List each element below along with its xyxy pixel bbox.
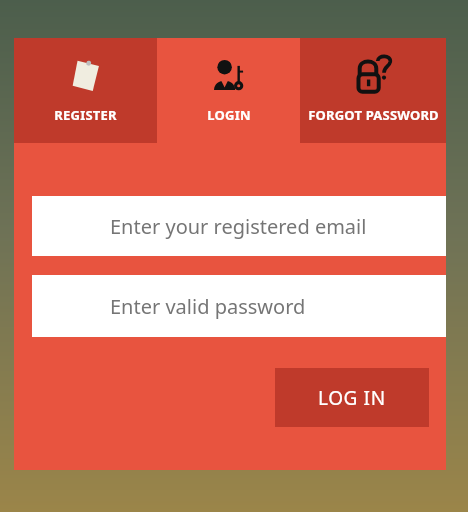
button[interactable]: Forgot password <box>300 38 446 143</box>
button[interactable]: Login <box>157 38 300 143</box>
staticText: Enter your registered email <box>110 213 367 240</box>
button[interactable]: LOG IN <box>275 368 429 427</box>
staticText: LOGIN <box>207 106 251 124</box>
staticText: FORGOT PASSWORD <box>308 106 439 124</box>
button[interactable]: Register <box>14 38 157 143</box>
other: Register <box>64 54 108 98</box>
staticText: Enter valid password <box>110 293 306 320</box>
staticText: LOG IN <box>318 385 386 411</box>
staticText: REGISTER <box>54 106 117 124</box>
button[interactable]: Enter valid password <box>32 275 446 337</box>
other: Login <box>207 54 251 98</box>
button[interactable]: Enter your registered email <box>32 196 446 256</box>
other: Forgot password <box>351 54 395 98</box>
